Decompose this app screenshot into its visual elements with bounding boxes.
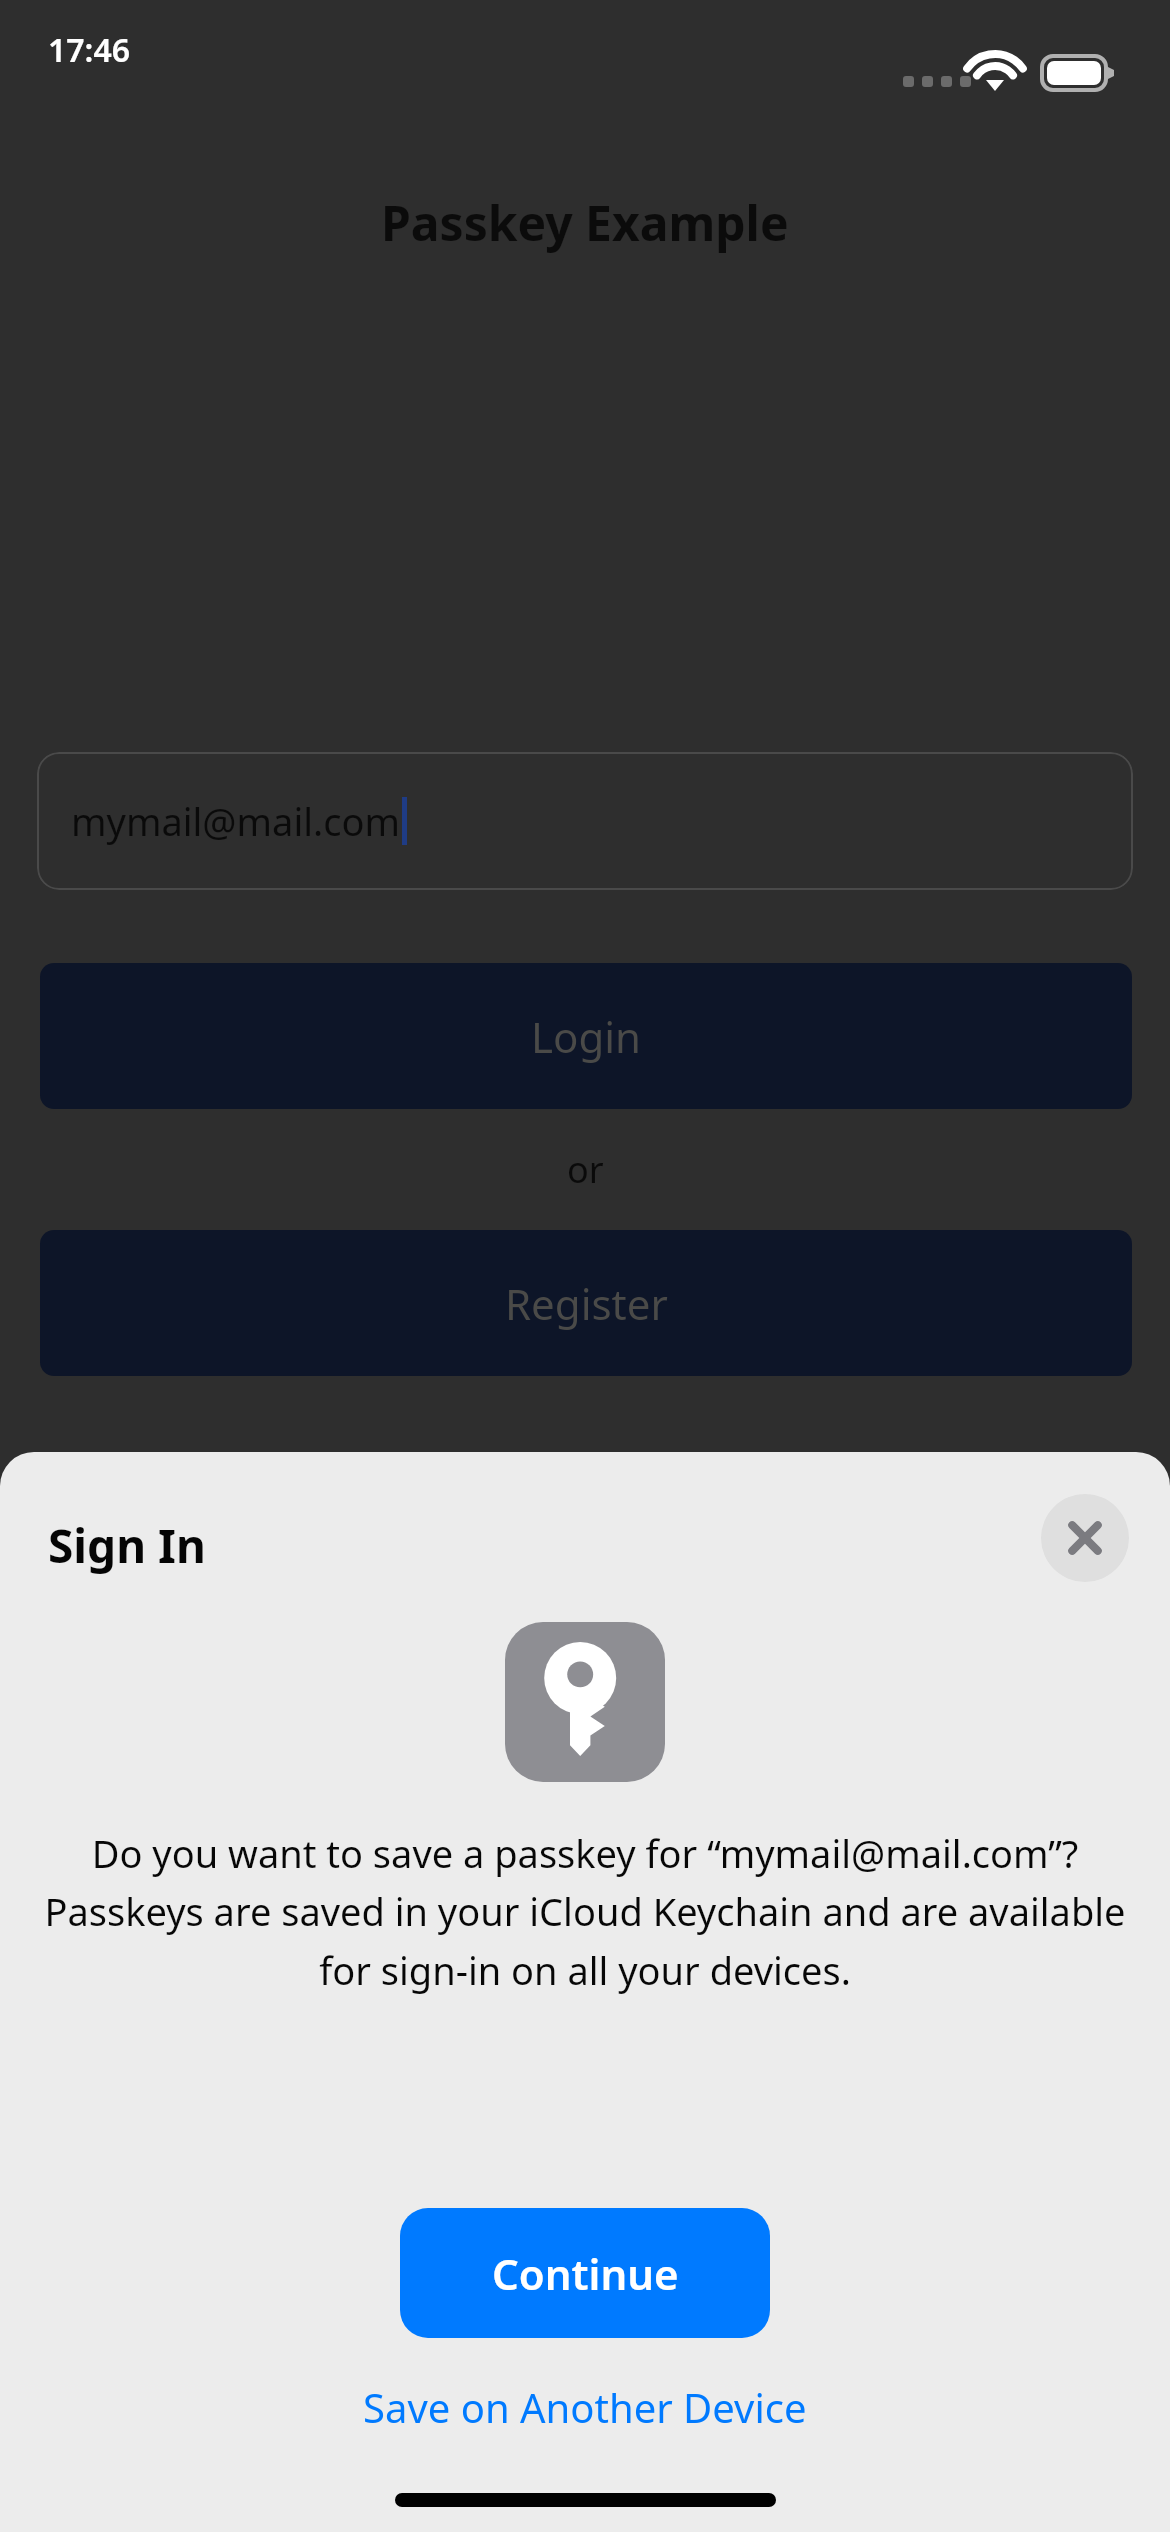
button[interactable]: mymail@mail.com	[37, 752, 1133, 890]
staticText: Continue	[492, 2245, 679, 2302]
staticText: Sign In	[48, 1514, 206, 1577]
staticText: Passkey Example	[381, 190, 789, 255]
staticText: mymail@mail.com	[71, 795, 400, 847]
staticText: Save on Another Device	[363, 2380, 807, 2434]
staticText: Do you want to save a passkey for “mymai…	[42, 1827, 1128, 1996]
staticText: or	[567, 1145, 604, 1194]
staticText: Login	[531, 1008, 642, 1065]
staticText: 17:46	[48, 28, 131, 72]
staticText: Register	[505, 1275, 668, 1332]
button[interactable]: Save on Another Device	[363, 2380, 807, 2434]
button[interactable]: Close	[1041, 1494, 1129, 1582]
button[interactable]: Register	[40, 1230, 1132, 1376]
button[interactable]: Continue	[400, 2208, 770, 2338]
button[interactable]: Login	[40, 963, 1132, 1109]
